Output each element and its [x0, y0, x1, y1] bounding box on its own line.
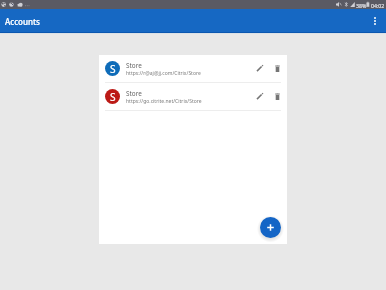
staticText: https://go.citrite.net/Citrix/Store — [126, 98, 202, 105]
staticText: 38% — [356, 2, 367, 9]
staticText: https://r@aj@jj.com/Citrix/Store — [126, 70, 201, 77]
staticText: Store — [126, 89, 142, 98]
button[interactable]: Delete — [271, 90, 284, 103]
staticText: S — [110, 90, 116, 104]
button[interactable]: Add account — [260, 217, 281, 238]
button[interactable]: S — [99, 55, 287, 82]
staticText: Store — [126, 61, 142, 70]
button[interactable]: S — [99, 83, 287, 110]
staticText: Accounts — [5, 16, 40, 27]
button[interactable]: Edit — [253, 62, 266, 75]
button[interactable]: More options — [369, 15, 381, 27]
staticText: S — [110, 62, 116, 76]
button[interactable]: Delete — [271, 62, 284, 75]
staticText: 04:02 — [371, 2, 385, 9]
button[interactable]: Edit — [253, 90, 266, 103]
